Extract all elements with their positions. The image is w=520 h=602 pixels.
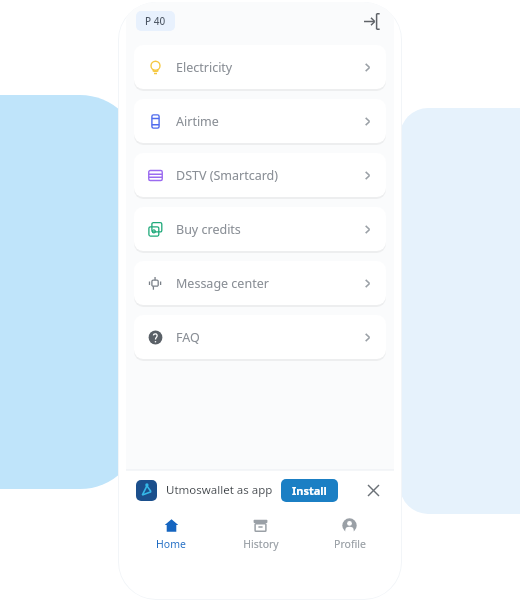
button[interactable]: Install (281, 479, 338, 502)
button[interactable]: Airtime (134, 99, 386, 143)
button[interactable]: Message center (134, 261, 386, 305)
staticText: P 40 (145, 14, 166, 28)
staticText: Home (156, 537, 186, 551)
button[interactable]: Log out (356, 6, 386, 36)
staticText: Electricity (176, 59, 233, 76)
staticText: History (243, 537, 279, 551)
button[interactable]: History (216, 510, 305, 558)
staticText: Utmoswallet as app (166, 482, 273, 498)
staticText: DSTV (Smartcard) (176, 167, 279, 184)
staticText: Message center (176, 275, 269, 292)
button[interactable]: Home (126, 510, 216, 558)
button[interactable]: Buy credits (134, 207, 386, 251)
staticText: Buy credits (176, 221, 241, 238)
button[interactable]: Electricity (134, 45, 386, 89)
button[interactable]: FAQ (134, 315, 386, 359)
button[interactable]: Profile (305, 510, 394, 558)
staticText: Profile (334, 537, 366, 551)
staticText: FAQ (176, 329, 200, 346)
button[interactable]: P 40 (136, 11, 175, 31)
button[interactable]: Dismiss (362, 479, 384, 501)
button[interactable]: DSTV (Smartcard) (134, 153, 386, 197)
staticText: Install (292, 483, 327, 498)
staticText: Airtime (176, 113, 219, 130)
